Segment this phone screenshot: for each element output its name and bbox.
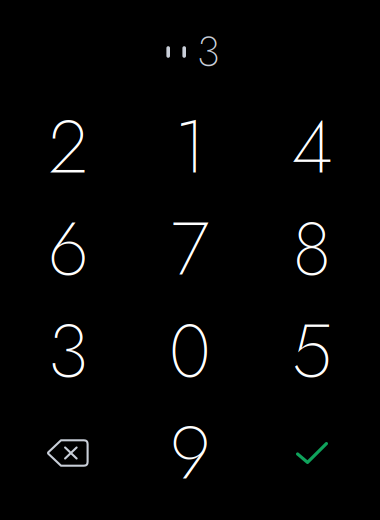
staticText: 8 — [292, 196, 331, 302]
staticText: 4 — [291, 94, 332, 200]
staticText: 6 — [48, 196, 88, 302]
staticText: 7 — [171, 196, 209, 302]
button[interactable]: 6 — [7, 198, 129, 300]
button[interactable]: 4 — [251, 96, 373, 198]
button[interactable]: 1 — [129, 96, 251, 198]
staticText: 5 — [291, 298, 332, 404]
button[interactable]: Delete — [7, 402, 129, 504]
button[interactable]: Confirm — [251, 402, 373, 504]
staticText: 0 — [169, 298, 211, 404]
button[interactable]: 5 — [251, 300, 373, 402]
staticText: 3 — [48, 298, 88, 404]
button[interactable]: 0 — [129, 300, 251, 402]
staticText: 3 — [197, 22, 220, 82]
staticText: 9 — [170, 400, 210, 506]
button[interactable]: 9 — [129, 402, 251, 504]
button[interactable]: 2 — [7, 96, 129, 198]
staticText: 1 — [174, 94, 205, 200]
button[interactable]: 7 — [129, 198, 251, 300]
button[interactable]: 3 — [7, 300, 129, 402]
staticText: 2 — [48, 94, 87, 200]
button[interactable]: 8 — [251, 198, 373, 300]
